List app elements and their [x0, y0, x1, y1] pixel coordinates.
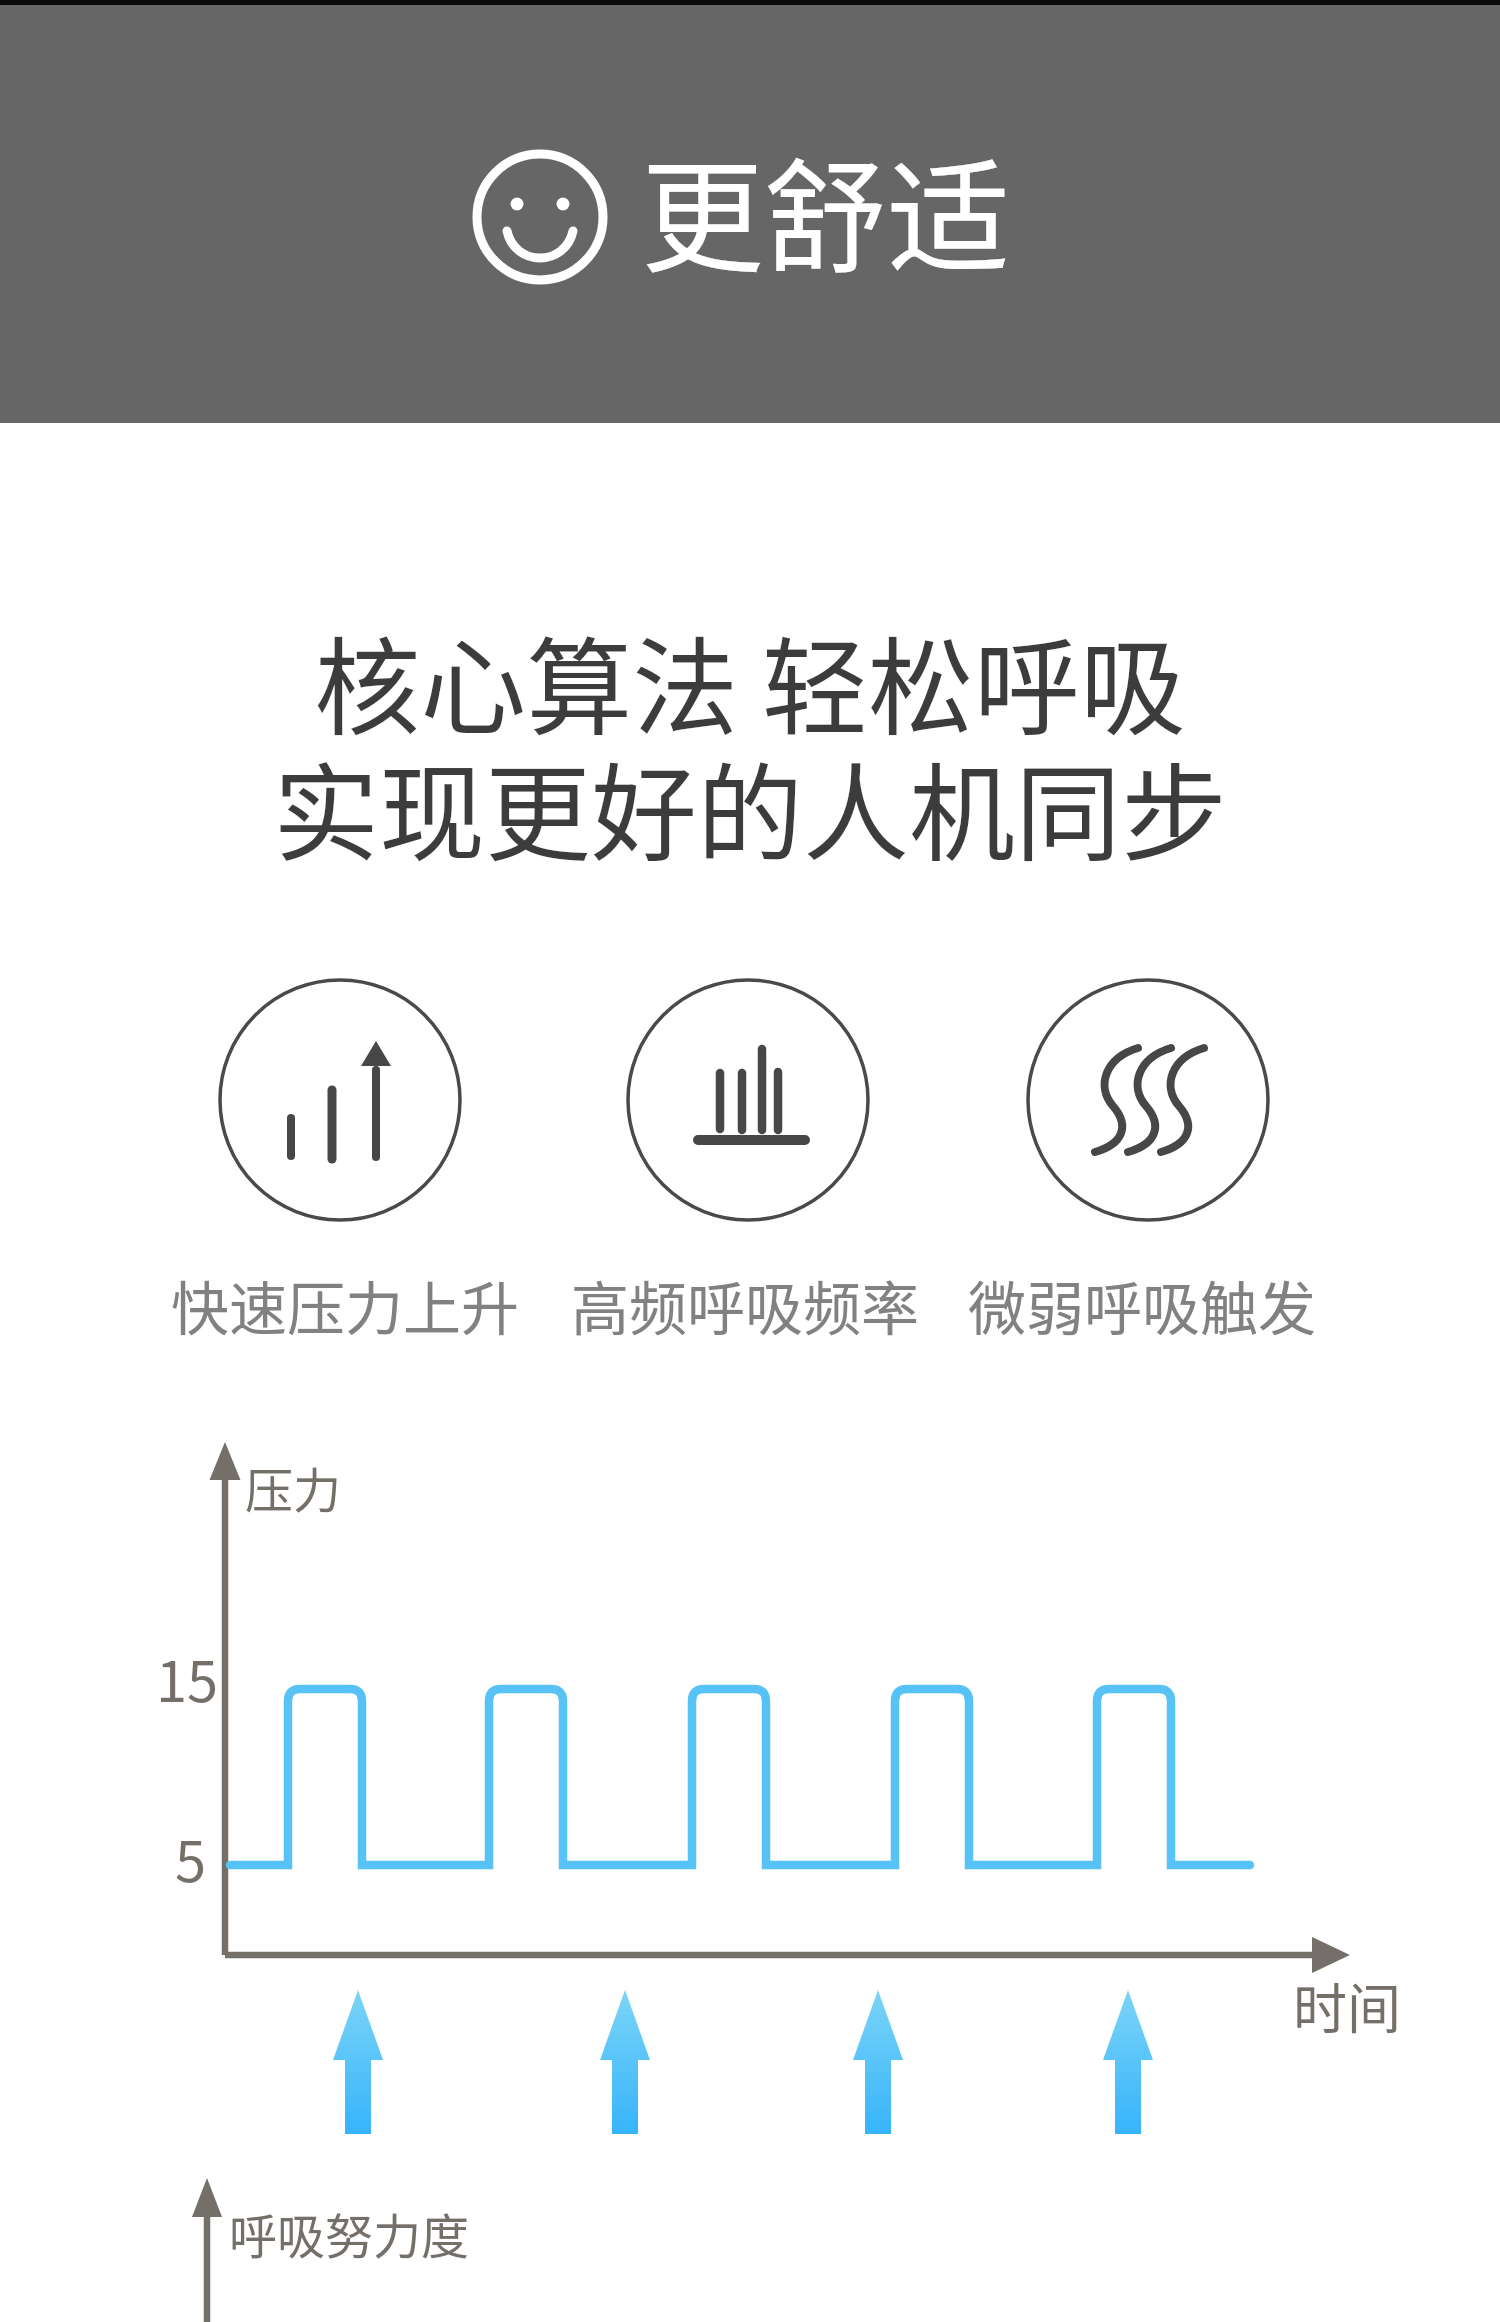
staticText: 15 — [156, 1637, 219, 1718]
staticText: 5 — [175, 1817, 207, 1898]
button[interactable]: 快速压力上升 — [171, 1263, 520, 1347]
button[interactable]: 高频呼吸频率 — [571, 1263, 920, 1347]
button[interactable]: Rapid pressure rise — [218, 978, 462, 1222]
staticText: 压力 — [245, 1452, 342, 1522]
staticText: 呼吸努力度 — [229, 2198, 470, 2268]
button[interactable]: Weak breath trigger — [1026, 978, 1270, 1222]
button[interactable]: High breathing rate — [626, 978, 870, 1222]
staticText: 核心算法 轻松呼吸 — [314, 603, 1186, 756]
staticText: 时间 — [1293, 1966, 1401, 2044]
button[interactable]: 微弱呼吸触发 — [968, 1263, 1317, 1347]
other: Comfort smiley — [471, 148, 609, 286]
button[interactable]: Comfort smiley — [0, 5, 1500, 423]
staticText: 实现更好的人机同步 — [273, 729, 1227, 882]
staticText: 更舒适 — [641, 119, 1010, 297]
